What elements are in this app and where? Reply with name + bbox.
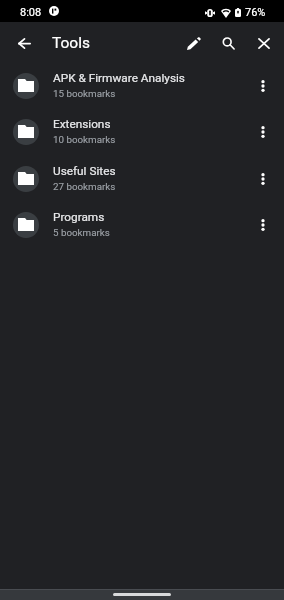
button[interactable]: More options xyxy=(246,109,280,155)
staticText: Programs xyxy=(53,210,105,224)
button[interactable]: Search xyxy=(211,23,246,63)
button[interactable]: More options xyxy=(246,63,280,109)
staticText: 8:08 xyxy=(20,6,42,19)
staticText: APK & Firmware Analysis xyxy=(53,71,185,85)
staticText: 5 bookmarks xyxy=(53,227,110,238)
staticText: 10 bookmarks xyxy=(53,134,116,145)
button[interactable]: Extensions xyxy=(0,109,284,155)
button[interactable]: Close xyxy=(246,23,281,63)
button[interactable]: Edit xyxy=(176,23,211,63)
staticText: Useful Sites xyxy=(53,164,116,178)
staticText: Tools xyxy=(52,34,90,52)
staticText: 27 bookmarks xyxy=(53,181,116,192)
staticText: 15 bookmarks xyxy=(53,88,116,99)
button[interactable]: Useful Sites xyxy=(0,156,284,202)
button[interactable]: APK & Firmware Analysis xyxy=(0,63,284,109)
button[interactable]: More options xyxy=(246,202,280,248)
button[interactable]: More options xyxy=(246,156,280,202)
staticText: Extensions xyxy=(53,117,111,131)
button[interactable]: Back xyxy=(5,24,43,62)
button[interactable]: Programs xyxy=(0,202,284,248)
staticText: 76% xyxy=(245,6,266,19)
